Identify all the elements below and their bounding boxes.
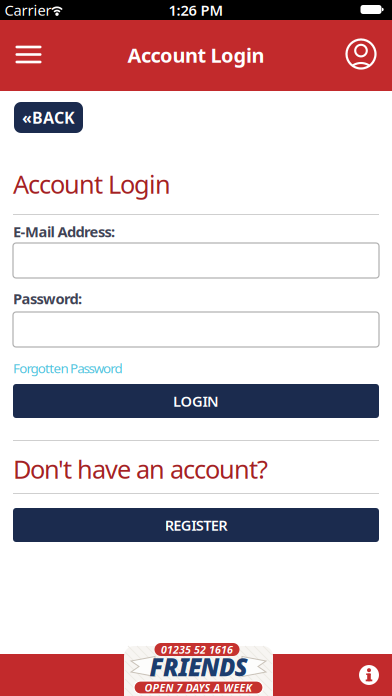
staticText: E-Mail Address: bbox=[13, 222, 115, 241]
staticText: OPEN 7 DAYS A WEEK bbox=[144, 680, 252, 695]
staticText: Carrier bbox=[4, 0, 51, 20]
button[interactable]: Menu bbox=[6, 34, 50, 74]
button[interactable]: REGISTER bbox=[13, 508, 379, 542]
button[interactable]: Forgotten Password bbox=[13, 359, 122, 377]
button[interactable]: Info bbox=[359, 665, 379, 685]
button[interactable]: «BACK bbox=[14, 102, 83, 133]
staticText: REGISTER bbox=[165, 515, 227, 535]
staticText: FRIENDS bbox=[149, 651, 247, 683]
staticText: Password: bbox=[13, 289, 82, 308]
button[interactable]: LOGIN bbox=[13, 384, 379, 418]
staticText: Don't have an account? bbox=[13, 452, 268, 486]
staticText: 01235 52 1616 bbox=[161, 642, 233, 657]
button[interactable]: Account bbox=[339, 32, 383, 76]
staticText: Account Login bbox=[127, 42, 264, 68]
staticText: Account Login bbox=[13, 167, 171, 201]
staticText: LOGIN bbox=[173, 391, 219, 411]
staticText: Forgotten Password bbox=[13, 359, 122, 377]
staticText: «BACK bbox=[22, 107, 75, 128]
staticText: 1:26 PM bbox=[168, 0, 223, 20]
